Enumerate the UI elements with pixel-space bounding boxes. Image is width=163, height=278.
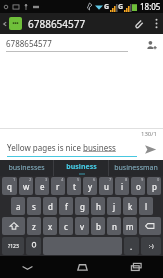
staticText: a — [16, 201, 21, 212]
staticText: 6788654577 — [6, 38, 52, 49]
staticText: k — [128, 201, 133, 212]
button[interactable]: z — [27, 217, 41, 235]
staticText: 9 — [141, 177, 144, 182]
staticText: o — [136, 181, 141, 192]
button[interactable]: More options — [149, 13, 163, 34]
button[interactable]: n — [107, 217, 121, 235]
staticText: Yellow pages is nice — [7, 142, 83, 153]
button[interactable]: 5 — [67, 177, 81, 195]
button[interactable]: Attach — [127, 13, 149, 34]
button[interactable]: l — [139, 197, 153, 215]
button[interactable]: Shift — [2, 217, 25, 235]
staticText: . — [130, 241, 133, 252]
button[interactable]: 4 — [51, 177, 65, 195]
staticText: p — [152, 181, 157, 192]
button[interactable]: . — [124, 237, 139, 255]
staticText: m — [126, 221, 134, 232]
staticText: u — [104, 181, 109, 192]
button[interactable]: Send — [137, 138, 163, 160]
staticText: G — [104, 2, 110, 12]
button[interactable]: business — [54, 160, 108, 176]
staticText: 0 — [157, 177, 160, 182]
staticText: f — [65, 201, 68, 212]
button[interactable]: b — [91, 217, 105, 235]
staticText: b — [96, 221, 101, 232]
button[interactable]: 0 — [147, 177, 161, 195]
staticText: 3 — [45, 177, 48, 182]
staticText: y — [88, 181, 93, 192]
button[interactable]: d — [43, 197, 57, 215]
button[interactable]: k — [123, 197, 137, 215]
button[interactable]: Voice input — [26, 237, 41, 255]
button[interactable]: Delete — [139, 217, 161, 235]
button[interactable]: 8 — [115, 177, 129, 195]
staticText: l — [145, 201, 148, 212]
staticText: h — [96, 201, 101, 212]
button[interactable]: g — [75, 197, 89, 215]
staticText: e — [40, 181, 45, 192]
button[interactable]: f — [59, 197, 73, 215]
button[interactable]: 2 — [19, 177, 33, 195]
staticText: t — [73, 181, 76, 192]
button[interactable]: Yellow pages is nice — [7, 142, 137, 157]
staticText: businessman — [114, 163, 158, 173]
staticText: 6 — [93, 177, 96, 182]
button[interactable]: :-) — [141, 237, 161, 255]
button[interactable]: 7 — [99, 177, 113, 195]
button[interactable]: businesses — [0, 160, 53, 176]
staticText: businesses — [8, 163, 45, 173]
staticText: c — [64, 221, 68, 232]
button[interactable]: Recent apps — [109, 256, 163, 278]
button[interactable]: s — [27, 197, 41, 215]
button[interactable]: h — [91, 197, 105, 215]
button[interactable]: v — [75, 217, 89, 235]
staticText: n — [112, 221, 117, 232]
button[interactable]: a — [11, 197, 25, 215]
staticText: 5 — [77, 177, 80, 182]
staticText: i — [121, 181, 124, 192]
button[interactable]: businessman — [109, 160, 163, 176]
staticText: 1 — [13, 177, 16, 182]
button[interactable]: 6 — [83, 177, 97, 195]
staticText: d — [48, 201, 53, 212]
staticText: 18:05 — [140, 1, 161, 12]
button[interactable]: ?123 — [2, 237, 24, 255]
staticText: q — [7, 181, 12, 192]
staticText: G — [118, 2, 124, 12]
staticText: 7 — [109, 177, 112, 182]
staticText: x — [48, 221, 53, 232]
button[interactable]: 1 — [2, 177, 17, 195]
staticText: v — [80, 221, 85, 232]
staticText: business — [83, 142, 116, 153]
staticText: :-) — [149, 243, 154, 250]
button[interactable]: 6788654577 — [6, 38, 128, 52]
staticText: g — [80, 201, 85, 212]
staticText: s — [32, 201, 36, 212]
staticText: 6788654577 — [28, 17, 86, 31]
staticText: 2 — [29, 177, 32, 182]
button[interactable]: Add contact — [144, 38, 158, 52]
button[interactable]: c — [59, 217, 73, 235]
staticText: w — [23, 181, 30, 192]
button[interactable]: Home — [55, 256, 109, 278]
button[interactable]: Navigate up — [0, 13, 24, 34]
button[interactable]: x — [43, 217, 57, 235]
staticText: ?123 — [8, 243, 19, 250]
staticText: 8 — [125, 177, 128, 182]
staticText: z — [32, 221, 36, 232]
button[interactable]: 9 — [131, 177, 145, 195]
button[interactable]: Hide keyboard — [0, 256, 55, 278]
staticText: 4 — [61, 177, 64, 182]
button[interactable]: j — [107, 197, 121, 215]
staticText: j — [113, 201, 116, 212]
button[interactable]: m — [123, 217, 137, 235]
staticText: business — [66, 162, 97, 172]
button[interactable]: 3 — [35, 177, 49, 195]
staticText: r — [56, 181, 60, 192]
staticText: 130/1 — [141, 130, 157, 138]
